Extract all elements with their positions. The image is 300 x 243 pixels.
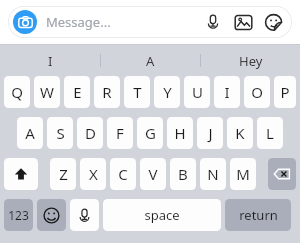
staticText: V xyxy=(148,164,158,184)
staticText: N xyxy=(207,164,219,184)
staticText: S xyxy=(56,123,65,143)
button[interactable]: A xyxy=(101,45,200,76)
staticText: P xyxy=(280,82,290,102)
staticText: Q xyxy=(11,82,23,102)
button[interactable]: Backspace xyxy=(268,158,296,190)
button[interactable]: J xyxy=(197,117,223,149)
staticText: T xyxy=(133,82,142,102)
staticText: M xyxy=(236,164,250,184)
staticText: Message... xyxy=(46,13,111,31)
staticText: C xyxy=(118,164,128,184)
staticText: U xyxy=(192,82,203,102)
button[interactable]: F xyxy=(107,117,133,149)
staticText: B xyxy=(178,164,188,184)
button[interactable]: Emoji xyxy=(37,199,66,231)
button[interactable]: Voice message xyxy=(201,10,225,34)
staticText: K xyxy=(235,123,245,143)
button[interactable]: T xyxy=(124,76,150,108)
button[interactable]: return xyxy=(225,199,291,231)
staticText: H xyxy=(174,123,186,143)
staticText: A xyxy=(146,52,155,70)
staticText: L xyxy=(266,123,274,143)
staticText: I xyxy=(48,52,53,70)
button[interactable]: B xyxy=(170,158,196,190)
staticText: W xyxy=(40,82,54,102)
button[interactable]: O xyxy=(244,76,270,108)
button[interactable]: M xyxy=(230,158,256,190)
button[interactable]: Y xyxy=(154,76,180,108)
button[interactable]: Camera xyxy=(13,10,37,34)
button[interactable]: A xyxy=(17,117,43,149)
staticText: E xyxy=(73,82,82,102)
button[interactable]: K xyxy=(227,117,253,149)
staticText: J xyxy=(208,123,213,143)
button[interactable]: I xyxy=(0,45,100,76)
staticText: 123 xyxy=(8,207,29,223)
button[interactable]: X xyxy=(80,158,106,190)
staticText: Hey xyxy=(239,52,263,70)
button[interactable]: Stickers xyxy=(261,10,285,34)
button[interactable]: U xyxy=(184,76,210,108)
button[interactable]: Q xyxy=(4,76,30,108)
staticText: A xyxy=(25,123,35,143)
staticText: Z xyxy=(59,164,68,184)
button[interactable]: G xyxy=(137,117,163,149)
staticText: G xyxy=(145,123,156,143)
button[interactable]: V xyxy=(140,158,166,190)
button[interactable]: R xyxy=(94,76,120,108)
button[interactable]: H xyxy=(167,117,193,149)
staticText: O xyxy=(251,82,263,102)
button[interactable]: Photos xyxy=(231,10,255,34)
button[interactable]: Hey xyxy=(201,45,300,76)
button[interactable]: D xyxy=(77,117,103,149)
button[interactable]: Z xyxy=(50,158,76,190)
button[interactable]: 123 xyxy=(4,199,33,231)
staticText: return xyxy=(239,206,278,224)
button[interactable]: W xyxy=(34,76,60,108)
button[interactable]: I xyxy=(214,76,240,108)
button[interactable]: E xyxy=(64,76,90,108)
button[interactable]: L xyxy=(257,117,283,149)
staticText: X xyxy=(89,164,98,184)
staticText: I xyxy=(224,82,230,102)
button[interactable]: N xyxy=(200,158,226,190)
staticText: D xyxy=(85,123,96,143)
button[interactable]: space xyxy=(103,199,221,231)
staticText: R xyxy=(102,82,112,102)
staticText: space xyxy=(144,206,180,224)
button[interactable]: S xyxy=(47,117,73,149)
staticText: Y xyxy=(163,82,172,102)
button[interactable]: Dictation xyxy=(70,199,99,231)
button[interactable]: Shift xyxy=(4,158,38,190)
button[interactable]: C xyxy=(110,158,136,190)
button[interactable]: P xyxy=(274,76,296,108)
staticText: F xyxy=(116,123,124,143)
